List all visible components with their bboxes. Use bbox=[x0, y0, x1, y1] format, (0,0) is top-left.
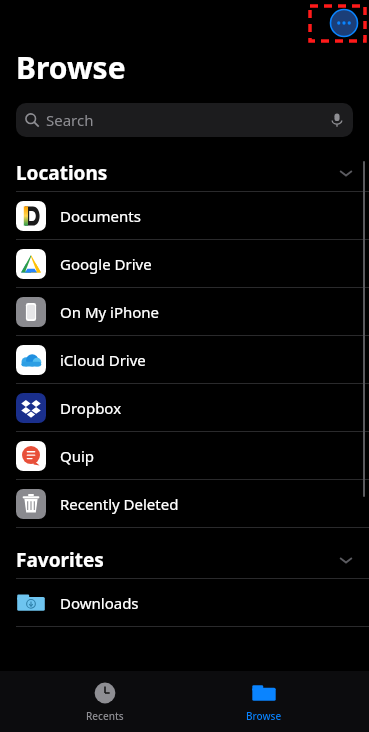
button[interactable]: Google Drive bbox=[0, 240, 369, 287]
staticText: Recently Deleted bbox=[60, 494, 179, 514]
staticText: Locations bbox=[16, 160, 108, 186]
staticText: On My iPhone bbox=[60, 302, 160, 322]
staticText: Google Drive bbox=[60, 254, 152, 274]
button[interactable]: Search bbox=[16, 103, 353, 137]
button[interactable]: Recents bbox=[50, 671, 160, 732]
staticText: Search bbox=[46, 110, 94, 130]
button[interactable]: Dropbox bbox=[0, 384, 369, 431]
button[interactable]: More options bbox=[328, 7, 360, 39]
button[interactable]: Recently Deleted bbox=[0, 480, 369, 527]
button[interactable]: On My iPhone bbox=[0, 288, 369, 335]
staticText: Favorites bbox=[16, 547, 104, 573]
button[interactable]: Favorites bbox=[0, 542, 369, 578]
staticText: iCloud Drive bbox=[60, 350, 146, 370]
staticText: Quip bbox=[60, 446, 95, 466]
staticText: Browse bbox=[246, 709, 282, 723]
staticText: Dropbox bbox=[60, 398, 122, 418]
button[interactable]: iCloud Drive bbox=[0, 336, 369, 383]
staticText: Documents bbox=[60, 206, 141, 226]
staticText: Recents bbox=[86, 709, 124, 723]
button[interactable]: Documents bbox=[0, 192, 369, 239]
button[interactable]: Browse bbox=[209, 671, 319, 732]
button[interactable]: Quip bbox=[0, 432, 369, 479]
button[interactable]: Locations bbox=[0, 155, 369, 191]
staticText: Browse bbox=[16, 47, 126, 88]
button[interactable]: Downloads bbox=[0, 579, 369, 626]
staticText: Downloads bbox=[60, 593, 139, 613]
